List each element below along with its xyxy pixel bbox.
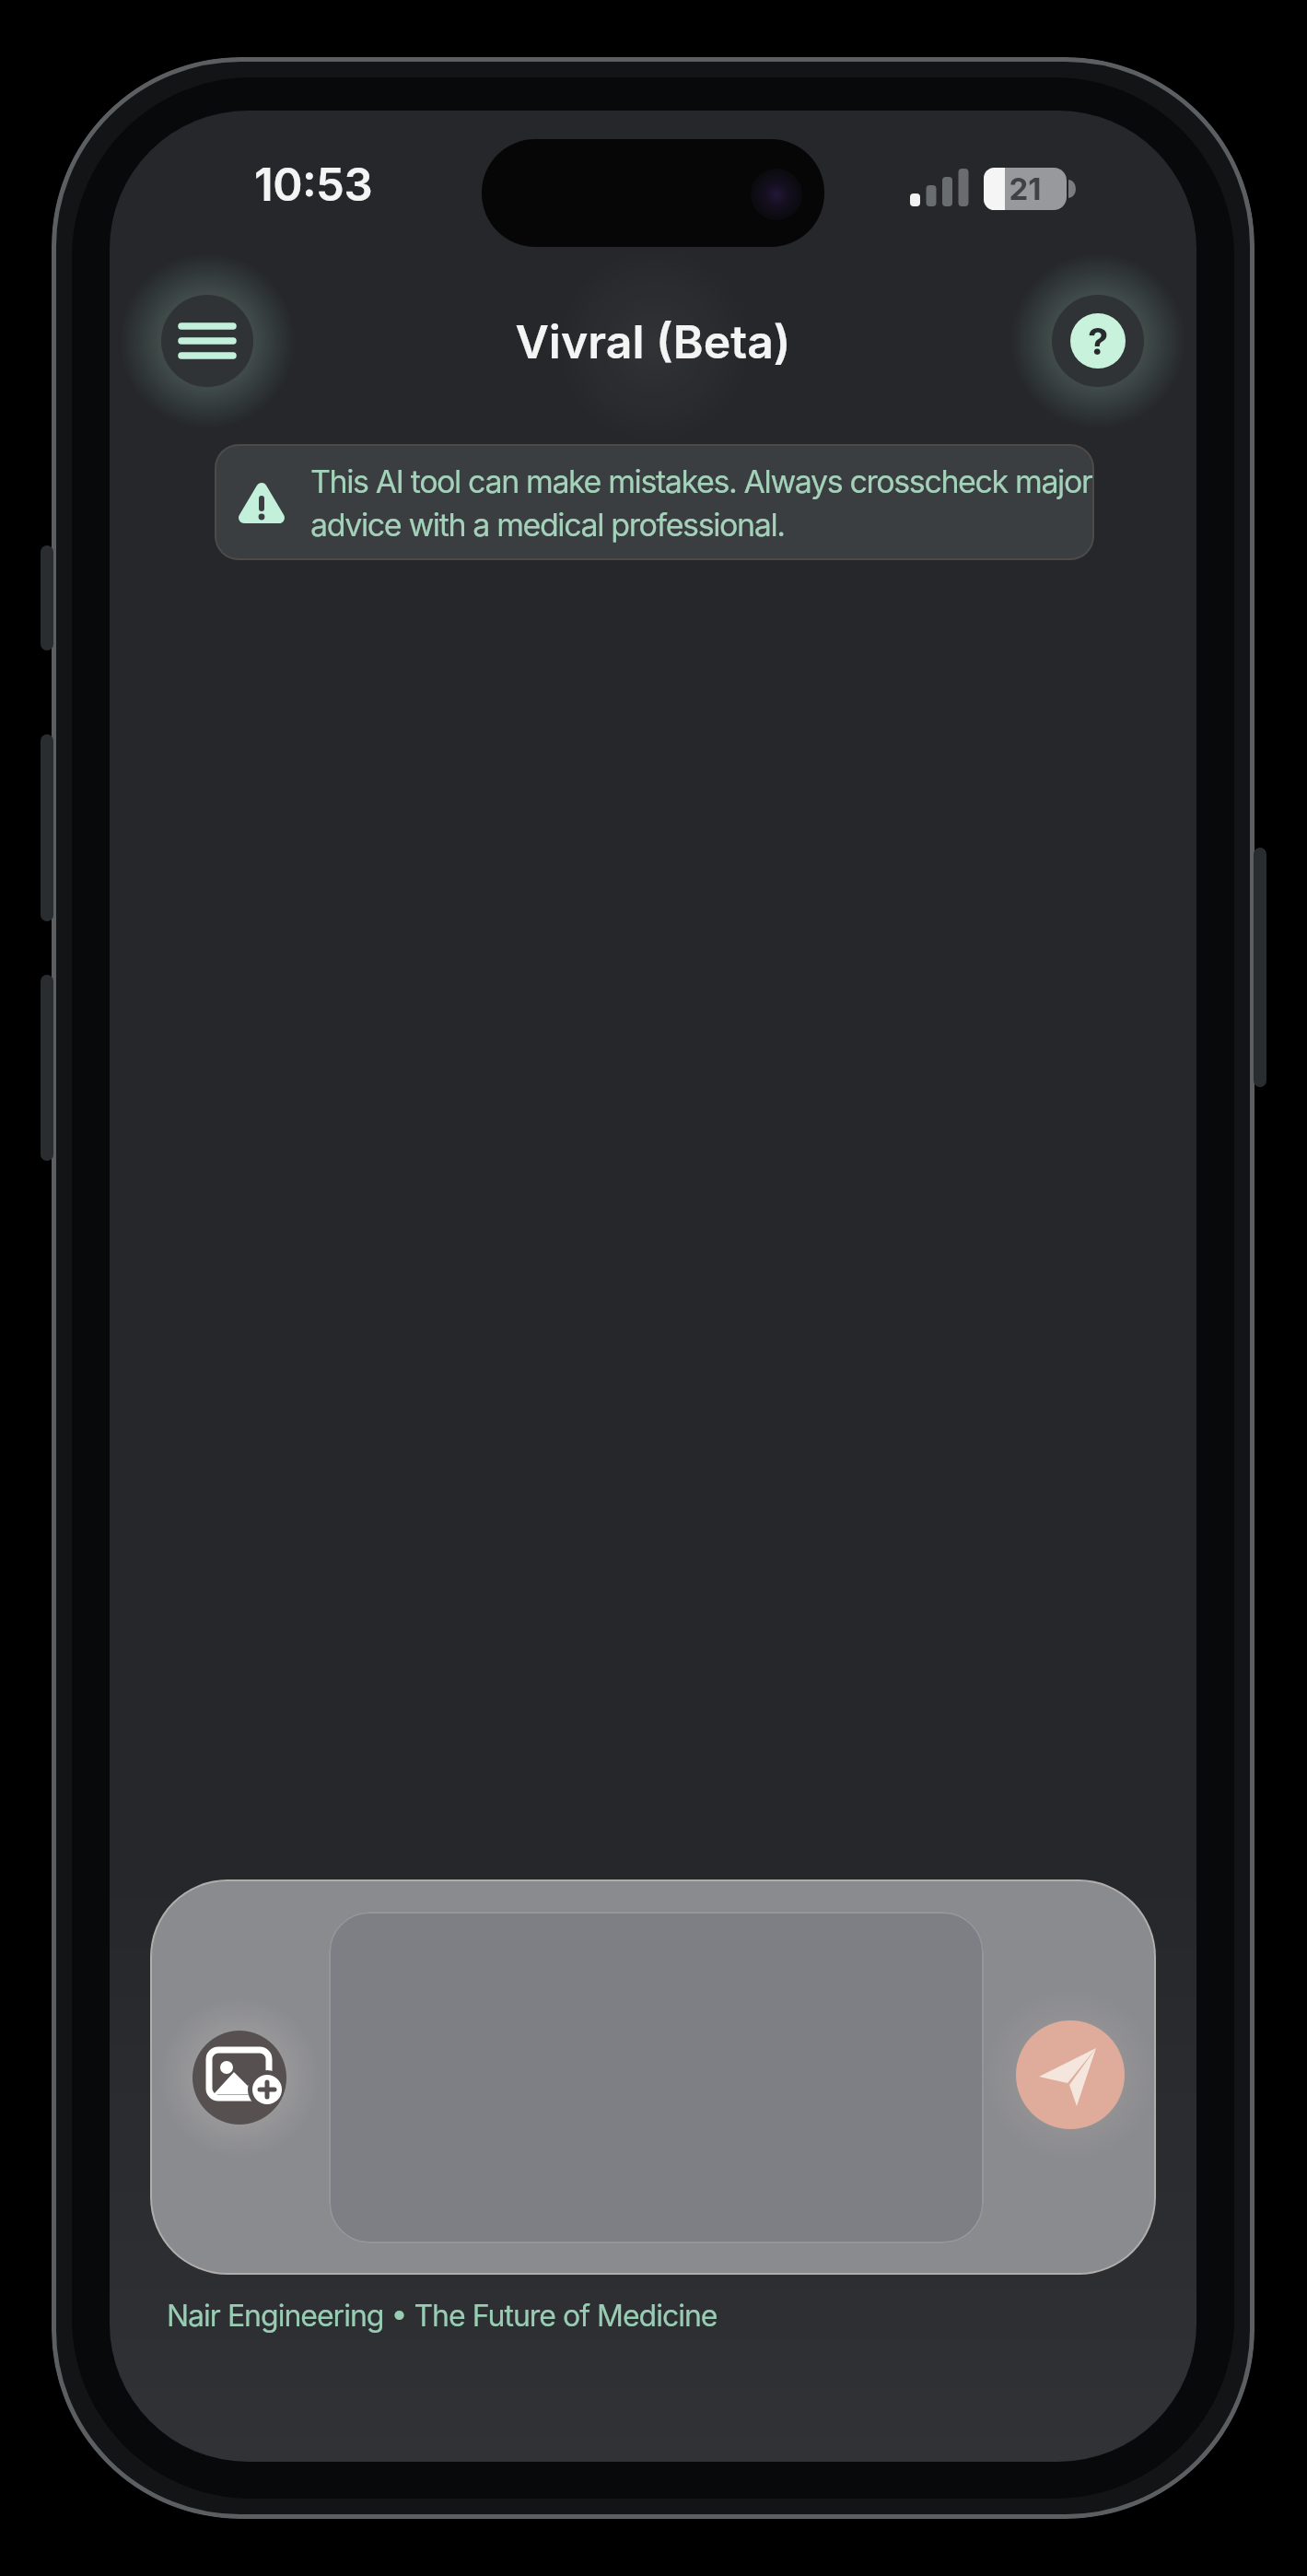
staticText: This AI tool can make mistakes. Always c… — [310, 463, 1092, 544]
button[interactable] — [1016, 2020, 1125, 2129]
staticText: 10:53 — [249, 158, 378, 212]
staticText: Nair Engineering • The Future of Medicin… — [167, 2298, 718, 2334]
staticText: 21 — [984, 170, 1067, 207]
button[interactable] — [150, 1879, 1156, 2275]
button[interactable]: ? — [1052, 295, 1144, 387]
staticText: Vivral (Beta) — [414, 314, 893, 369]
staticText: ? — [1088, 319, 1109, 363]
button[interactable] — [193, 2031, 286, 2125]
button[interactable] — [161, 295, 253, 387]
